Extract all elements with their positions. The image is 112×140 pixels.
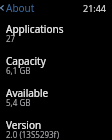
staticText: Applications [6, 22, 64, 36]
staticText: 21:44 [83, 2, 107, 14]
staticText: 5,4 GB [6, 97, 31, 108]
staticText: Available [6, 86, 49, 100]
staticText: 2.0 (13S5293f) [6, 129, 60, 140]
staticText: 27 [6, 33, 16, 44]
staticText: About [6, 1, 35, 13]
staticText: 6,1 GB [6, 65, 31, 76]
button[interactable]: Capacity [0, 54, 112, 84]
button[interactable]: Version [0, 118, 112, 140]
staticText: Capacity [6, 54, 46, 68]
staticText: Version [6, 118, 42, 132]
button[interactable]: Applications [0, 22, 112, 52]
button[interactable]: Back to About [0, 1, 35, 13]
button[interactable]: Available [0, 86, 112, 116]
